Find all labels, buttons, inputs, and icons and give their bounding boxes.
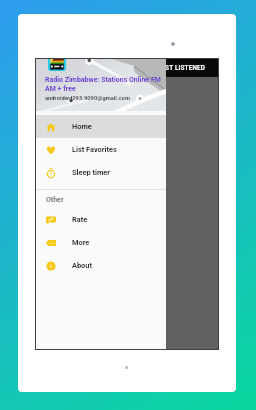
- other: Home: [46, 122, 56, 132]
- staticText: List Favorites: [72, 145, 117, 154]
- button[interactable]: Rate: [36, 208, 166, 231]
- button[interactable]: Home: [36, 115, 166, 138]
- staticText: Radio Zimbabwe: Stations Online FM AM + …: [45, 76, 166, 93]
- staticText: More: [72, 238, 90, 247]
- staticText: LAST LISTENED: [157, 64, 206, 72]
- staticText: androidwd093.9090@gmail.com: [45, 95, 130, 102]
- button[interactable]: About: [36, 254, 166, 277]
- staticText: Sleep timer: [72, 168, 111, 177]
- button[interactable]: Sleep timer: [36, 161, 166, 184]
- other: Rate: [46, 215, 56, 225]
- staticText: Rate: [72, 215, 88, 224]
- button[interactable]: More: [36, 231, 166, 254]
- staticText: About: [72, 261, 92, 270]
- other: About: [46, 261, 56, 271]
- staticText: Other: [46, 196, 64, 204]
- other: Sleep timer: [46, 168, 56, 178]
- staticText: Home: [72, 122, 92, 131]
- other: List Favorites: [46, 145, 56, 155]
- button[interactable]: List Favorites: [36, 138, 166, 161]
- other: More: [46, 238, 56, 248]
